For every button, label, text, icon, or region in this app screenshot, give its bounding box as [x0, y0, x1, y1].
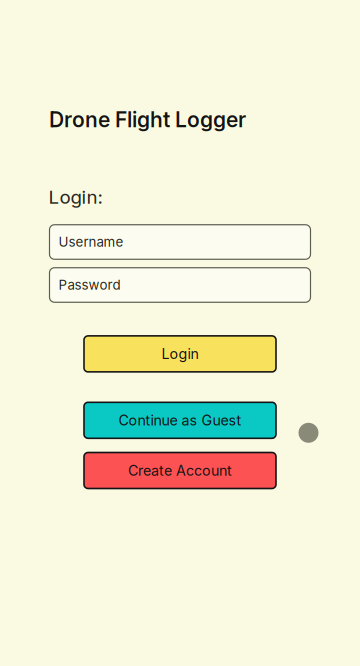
staticText: Create Account [128, 462, 232, 479]
staticText: Drone Flight Logger [49, 107, 246, 132]
staticText: Password [58, 277, 120, 293]
staticText: Username [58, 234, 123, 250]
button[interactable]: Continue as Guest [84, 402, 276, 438]
staticText: Login [161, 345, 198, 363]
staticText: Login: [48, 186, 102, 208]
button[interactable]: Create Account [84, 452, 276, 488]
staticText: Continue as Guest [118, 412, 241, 429]
button[interactable]: Login [84, 336, 276, 372]
